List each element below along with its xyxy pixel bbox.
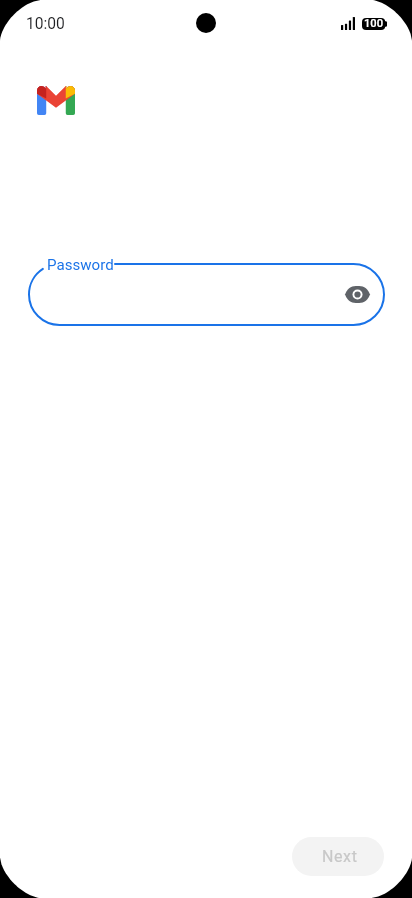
staticText: 10:00: [26, 15, 65, 33]
staticText: 100: [362, 17, 385, 30]
staticText: Password: [47, 256, 114, 274]
button[interactable]: Show password: [333, 270, 381, 318]
other: Gmail: [37, 86, 75, 115]
staticText: Next: [322, 847, 358, 866]
button[interactable]: Password: [28, 263, 358, 326]
button[interactable]: Next: [292, 837, 384, 876]
